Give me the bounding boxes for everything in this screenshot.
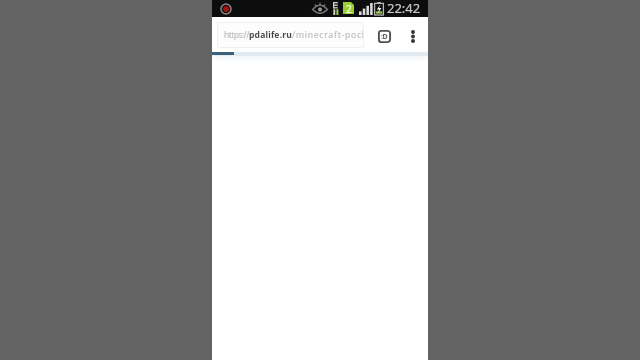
staticText: 22:42 — [387, 0, 421, 16]
button[interactable]: https:// — [217, 22, 364, 48]
staticText: 2 — [346, 2, 352, 14]
button[interactable]: Tabs — [378, 30, 391, 43]
button[interactable]: More options — [404, 25, 422, 47]
staticText: https:// — [224, 29, 249, 41]
staticText: :D — [381, 32, 388, 42]
staticText: /minecraft-pocke — [292, 29, 363, 41]
staticText: pdalife.ru — [249, 29, 292, 41]
